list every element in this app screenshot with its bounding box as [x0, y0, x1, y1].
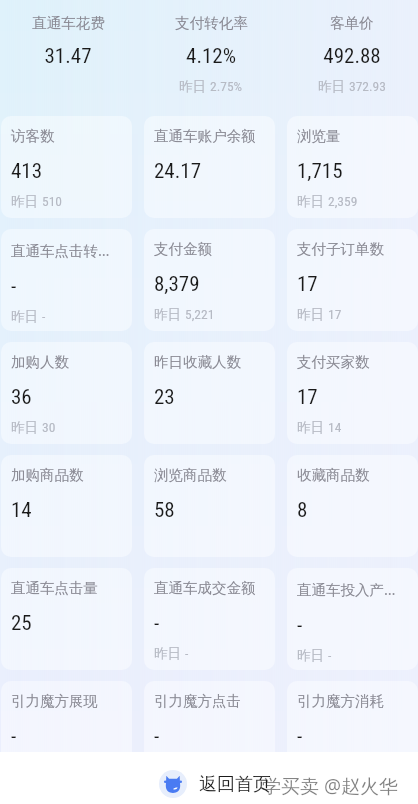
staticText: 返回首页 — [199, 773, 271, 796]
staticText: 36 — [11, 385, 32, 410]
staticText: - — [11, 274, 17, 299]
staticText: 浏览商品数 — [154, 466, 227, 484]
staticText: 492.88 — [323, 44, 381, 69]
staticText: 支付子订单数 — [297, 240, 384, 258]
staticText: 引力魔方展现 — [11, 692, 98, 710]
staticText: 加购人数 — [11, 353, 69, 371]
button[interactable]: 支付金额 — [144, 229, 275, 331]
button[interactable]: 支付转化率 — [136, 0, 286, 95]
staticText: 引力魔方消耗 — [297, 692, 384, 710]
staticText: - — [154, 611, 160, 636]
staticText: 直通车花费 — [32, 14, 105, 32]
staticText: 客单价 — [330, 14, 374, 32]
staticText: - — [328, 647, 332, 663]
staticText: 收藏商品数 — [297, 466, 370, 484]
staticText: 昨日 — [297, 192, 328, 210]
staticText: 8 — [297, 498, 308, 523]
staticText: 昨日 — [11, 418, 42, 436]
staticText: 昨日收藏人数 — [154, 353, 241, 371]
staticText: 17 — [297, 385, 318, 410]
button[interactable]: 浏览量 — [287, 116, 418, 218]
staticText: 14 — [11, 498, 32, 523]
staticText: 372.93 — [349, 78, 386, 94]
button[interactable]: 访客数 — [1, 116, 132, 218]
staticText: 昨日 — [297, 305, 328, 323]
button[interactable]: 直通车点击量 — [1, 568, 132, 670]
staticText: 昨日 — [318, 77, 349, 95]
staticText: - — [297, 613, 303, 638]
staticText: 25 — [11, 611, 32, 636]
button[interactable]: 返回首页 — [159, 770, 271, 798]
staticText: 昨日 — [179, 77, 210, 95]
staticText: - — [42, 308, 46, 324]
staticText: 58 — [154, 498, 175, 523]
staticText: - — [297, 724, 303, 749]
other: 返回首页 — [164, 775, 182, 793]
staticText: 30 — [42, 419, 56, 435]
staticText: 昨日 — [154, 644, 185, 662]
button[interactable]: 引力魔方点击 — [144, 681, 275, 783]
button[interactable]: 昨日收藏人数 — [144, 342, 275, 444]
button[interactable]: 直通车点击转… — [1, 229, 132, 331]
button[interactable]: 直通车账户余额 — [144, 116, 275, 218]
staticText: 510 — [42, 193, 62, 209]
button[interactable]: 直通车投入产… — [287, 568, 418, 670]
staticText: 413 — [11, 159, 43, 184]
staticText: 昨日 — [297, 418, 328, 436]
staticText: 2.75% — [210, 78, 243, 94]
staticText: 1,715 — [297, 159, 343, 184]
staticText: 24.17 — [154, 159, 202, 184]
staticText: 昨日 — [297, 646, 328, 664]
staticText: - — [11, 724, 17, 749]
button[interactable]: 直通车花费 — [0, 0, 136, 69]
staticText: 直通车成交金额 — [154, 579, 256, 597]
button[interactable]: 客单价 — [286, 0, 418, 95]
button[interactable]: 引力魔方消耗 — [287, 681, 418, 783]
staticText: 昨日 — [11, 192, 42, 210]
staticText: 加购商品数 — [11, 466, 84, 484]
staticText: 支付金额 — [154, 240, 212, 258]
button[interactable]: 引力魔方展现 — [1, 681, 132, 783]
staticText: 昨日 — [11, 307, 42, 325]
staticText: 23 — [154, 385, 175, 410]
staticText: 支付转化率 — [175, 14, 248, 32]
staticText: 直通车点击量 — [11, 579, 98, 597]
staticText: 4.12% — [186, 44, 236, 69]
staticText: 2,359 — [328, 193, 358, 209]
button[interactable]: 浏览商品数 — [144, 455, 275, 557]
staticText: 昨日 — [154, 305, 185, 323]
staticText: 17 — [297, 272, 318, 297]
staticText: 17 — [328, 306, 342, 322]
staticText: 学买卖 @赵火华 — [262, 773, 399, 799]
staticText: 直通车投入产… — [297, 579, 396, 599]
button[interactable]: 加购商品数 — [1, 455, 132, 557]
staticText: 支付买家数 — [297, 353, 370, 371]
staticText: 引力魔方点击 — [154, 692, 241, 710]
button[interactable]: 收藏商品数 — [287, 455, 418, 557]
button[interactable]: 支付买家数 — [287, 342, 418, 444]
staticText: 5,221 — [185, 306, 215, 322]
staticText: 直通车点击转… — [11, 240, 110, 260]
staticText: 14 — [328, 419, 342, 435]
staticText: - — [185, 645, 189, 661]
staticText: 直通车账户余额 — [154, 127, 256, 145]
staticText: 浏览量 — [297, 127, 341, 145]
button[interactable]: 支付子订单数 — [287, 229, 418, 331]
staticText: 31.47 — [44, 44, 92, 69]
staticText: 8,379 — [154, 272, 200, 297]
button[interactable]: 直通车成交金额 — [144, 568, 275, 670]
staticText: 访客数 — [11, 127, 55, 145]
button[interactable]: 加购人数 — [1, 342, 132, 444]
staticText: - — [154, 724, 160, 749]
